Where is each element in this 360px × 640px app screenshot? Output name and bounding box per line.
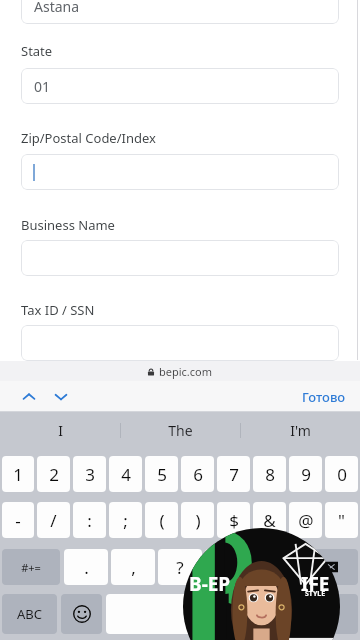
staticText: ABC <box>17 605 42 623</box>
staticText: 3 <box>85 463 95 486</box>
staticText: & <box>263 509 276 532</box>
staticText: The <box>168 421 193 440</box>
staticText: $ <box>229 509 239 532</box>
button[interactable]: ABC <box>2 594 57 634</box>
button[interactable] <box>21 154 339 190</box>
staticText: : <box>87 509 92 532</box>
staticText: 4 <box>121 463 131 486</box>
button[interactable]: ? <box>158 549 202 585</box>
staticText: bepic.com <box>159 364 213 379</box>
staticText: I <box>58 421 63 440</box>
staticText: ( <box>159 509 165 532</box>
button[interactable]: 1 <box>2 456 34 492</box>
staticText: @ <box>298 509 314 532</box>
staticText: Zip/Postal Code/Index <box>21 129 156 147</box>
button[interactable]: ; <box>109 502 142 538</box>
button[interactable]: Emoji <box>61 594 102 634</box>
staticText: - <box>15 509 21 532</box>
button[interactable]: , <box>111 549 155 585</box>
staticText: 9 <box>301 463 311 486</box>
button[interactable]: The <box>121 412 240 449</box>
button[interactable]: & <box>253 502 286 538</box>
button[interactable]: #+= <box>2 549 60 585</box>
staticText: ) <box>195 509 201 532</box>
button[interactable]: 0 <box>325 456 358 492</box>
button[interactable]: ' <box>252 549 296 585</box>
button[interactable]: 7 <box>217 456 250 492</box>
button[interactable]: . <box>64 549 108 585</box>
staticText: " <box>338 509 345 532</box>
staticText: ? <box>176 556 184 579</box>
staticText: State <box>21 42 53 60</box>
button[interactable]: 9 <box>289 456 322 492</box>
staticText: STYLE <box>305 589 326 599</box>
button[interactable]: Next field <box>46 382 76 412</box>
staticText: , <box>131 556 136 579</box>
button[interactable]: Video call participant <box>183 528 340 640</box>
button[interactable]: 4 <box>109 456 142 492</box>
staticText: 2 <box>49 463 59 486</box>
button[interactable]: " <box>325 502 358 538</box>
button[interactable] <box>21 240 339 276</box>
button[interactable]: Backspace <box>300 549 358 585</box>
button[interactable]: space <box>106 594 278 634</box>
staticText: ' <box>272 556 276 579</box>
staticText: 5 <box>157 463 167 486</box>
staticText: #+= <box>21 560 41 575</box>
button[interactable]: / <box>37 502 70 538</box>
staticText: 0 <box>337 463 347 486</box>
staticText: IFE <box>301 571 330 597</box>
staticText: B-EP <box>189 571 231 597</box>
button[interactable]: @ <box>289 502 322 538</box>
staticText: ! <box>225 556 230 579</box>
button[interactable]: ! <box>205 549 249 585</box>
button[interactable]: : <box>73 502 106 538</box>
staticText: 1 <box>13 463 23 486</box>
button[interactable]: 8 <box>253 456 286 492</box>
staticText: Tax ID / SSN <box>21 301 95 319</box>
button[interactable]: 2 <box>37 456 70 492</box>
staticText: Astana <box>34 0 80 16</box>
button[interactable]: Готово <box>298 384 350 410</box>
staticText: ; <box>123 509 128 532</box>
staticText: 01 <box>34 77 51 96</box>
button[interactable]: 5 <box>145 456 178 492</box>
button[interactable]: ( <box>145 502 178 538</box>
button[interactable] <box>21 325 339 361</box>
staticText: 8 <box>265 463 275 486</box>
staticText: 7 <box>229 463 239 486</box>
button[interactable]: Previous field <box>14 382 44 412</box>
button[interactable]: I <box>0 412 120 449</box>
button[interactable]: bepic.com <box>0 361 360 381</box>
button[interactable]: ) <box>181 502 214 538</box>
button[interactable]: $ <box>217 502 250 538</box>
staticText: . <box>84 556 89 579</box>
button[interactable]: 3 <box>73 456 106 492</box>
staticText: Готово <box>302 388 346 406</box>
button[interactable]: I'm <box>241 412 360 449</box>
staticText: 6 <box>193 463 203 486</box>
button[interactable]: 01 <box>21 68 339 104</box>
staticText: I'm <box>290 421 311 440</box>
button[interactable]: - <box>2 502 34 538</box>
staticText: Business Name <box>21 216 115 234</box>
button[interactable]: 6 <box>181 456 214 492</box>
button[interactable]: Ввод <box>282 594 358 634</box>
button[interactable]: Astana <box>21 0 339 24</box>
staticText: / <box>50 509 57 532</box>
